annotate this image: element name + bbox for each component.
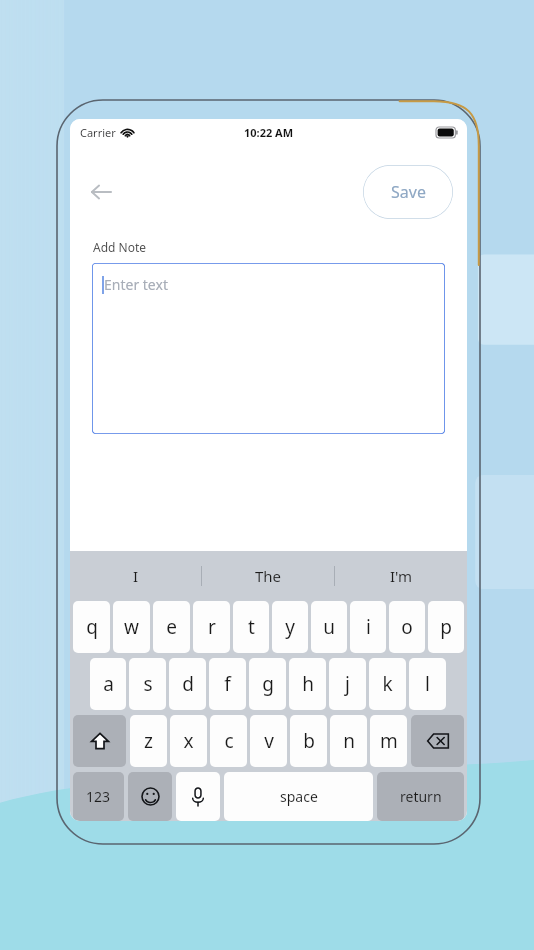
button[interactable]: p xyxy=(428,601,464,653)
button[interactable]: d xyxy=(169,658,206,710)
button[interactable]: Backspace xyxy=(411,715,464,767)
staticText: return xyxy=(400,787,442,806)
button[interactable]: n xyxy=(330,715,367,767)
staticText: Carrier xyxy=(80,125,116,140)
staticText: Enter text xyxy=(104,275,168,294)
staticText: e xyxy=(166,614,177,640)
button[interactable]: Enter text xyxy=(92,263,445,434)
staticText: u xyxy=(323,614,335,640)
button[interactable]: e xyxy=(153,601,190,653)
button[interactable]: Dictation xyxy=(176,772,220,821)
button[interactable]: Emoji xyxy=(128,772,172,821)
button[interactable]: j xyxy=(329,658,366,710)
button[interactable]: c xyxy=(210,715,247,767)
button[interactable]: u xyxy=(311,601,347,653)
button[interactable]: I'm xyxy=(335,551,467,601)
staticText: o xyxy=(401,614,413,640)
staticText: The xyxy=(255,566,282,586)
staticText: i xyxy=(366,614,371,640)
staticText: z xyxy=(144,728,153,754)
button[interactable]: h xyxy=(289,658,326,710)
button[interactable]: s xyxy=(129,658,166,710)
staticText: f xyxy=(224,671,231,697)
button[interactable]: b xyxy=(290,715,327,767)
staticText: n xyxy=(343,728,355,754)
staticText: Add Note xyxy=(93,239,147,255)
button[interactable]: m xyxy=(370,715,407,767)
button[interactable]: Save xyxy=(363,165,453,219)
button[interactable]: w xyxy=(113,601,150,653)
button[interactable]: Shift xyxy=(73,715,126,767)
button[interactable]: l xyxy=(409,658,446,710)
button[interactable]: space xyxy=(224,772,373,821)
staticText: r xyxy=(208,614,216,640)
staticText: l xyxy=(425,671,430,697)
button[interactable]: k xyxy=(369,658,406,710)
staticText: x xyxy=(183,728,194,754)
staticText: j xyxy=(345,671,350,697)
staticText: 123 xyxy=(86,787,111,806)
staticText: m xyxy=(380,728,398,754)
staticText: c xyxy=(224,728,234,754)
button[interactable]: i xyxy=(350,601,386,653)
button[interactable]: v xyxy=(250,715,287,767)
staticText: h xyxy=(302,671,314,697)
staticText: y xyxy=(285,614,295,640)
staticText: k xyxy=(382,671,393,697)
staticText: t xyxy=(248,614,255,640)
button[interactable]: Back xyxy=(82,173,120,211)
staticText: v xyxy=(264,728,274,754)
button[interactable]: I xyxy=(70,551,201,601)
button[interactable]: o xyxy=(389,601,425,653)
staticText: s xyxy=(143,671,153,697)
staticText: Save xyxy=(391,181,426,203)
button[interactable]: y xyxy=(272,601,308,653)
button[interactable]: f xyxy=(209,658,246,710)
staticText: d xyxy=(182,671,194,697)
button[interactable]: a xyxy=(90,658,126,710)
staticText: a xyxy=(103,671,114,697)
staticText: I xyxy=(133,566,139,586)
button[interactable]: 123 xyxy=(73,772,124,821)
button[interactable]: g xyxy=(249,658,286,710)
button[interactable]: t xyxy=(233,601,269,653)
button[interactable]: q xyxy=(73,601,110,653)
button[interactable]: The xyxy=(202,551,334,601)
staticText: I'm xyxy=(390,566,413,586)
staticText: space xyxy=(280,787,318,806)
staticText: 10:22 AM xyxy=(244,125,294,140)
button[interactable]: r xyxy=(193,601,230,653)
staticText: w xyxy=(124,614,139,640)
button[interactable]: x xyxy=(170,715,207,767)
staticText: b xyxy=(303,728,315,754)
button[interactable]: z xyxy=(130,715,167,767)
staticText: p xyxy=(440,614,452,640)
staticText: g xyxy=(262,671,274,697)
button[interactable]: return xyxy=(377,772,464,821)
staticText: q xyxy=(86,614,98,640)
